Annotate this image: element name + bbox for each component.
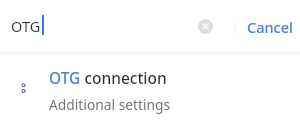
button[interactable]: Search query <box>4 8 184 42</box>
button[interactable]: Clear query <box>191 12 219 40</box>
staticText: OTG <box>11 16 41 36</box>
button[interactable]: Cancel <box>247 17 293 37</box>
staticText: Additional settings <box>49 95 171 114</box>
button[interactable]: OTG connection <box>0 60 300 116</box>
staticText: OTG connection <box>49 67 167 88</box>
staticText: Cancel <box>247 17 293 37</box>
